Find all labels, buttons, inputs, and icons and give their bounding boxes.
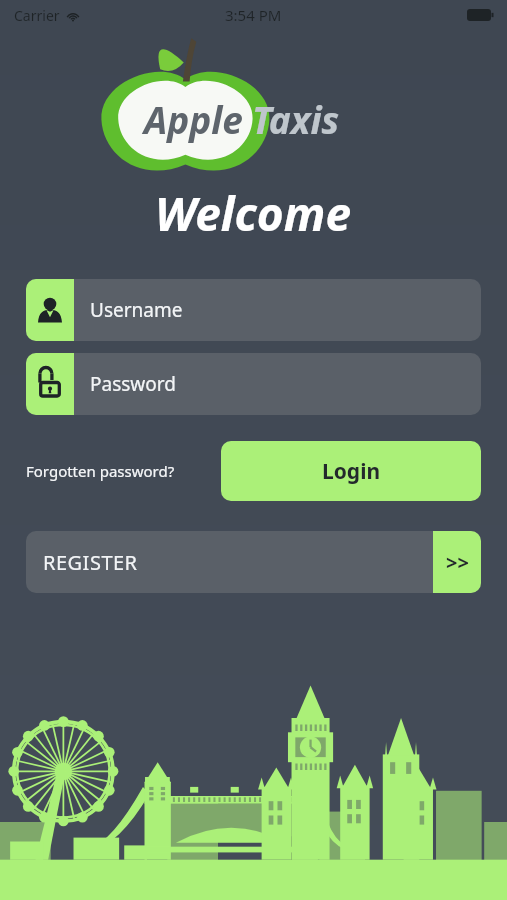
staticText: Username bbox=[90, 297, 183, 323]
staticText: Carrier bbox=[14, 6, 60, 25]
button[interactable]: Forgotten password? bbox=[26, 441, 221, 501]
button[interactable]: REGISTER bbox=[26, 531, 481, 593]
staticText: 3:54 PM bbox=[225, 5, 282, 25]
staticText: Password bbox=[90, 371, 176, 397]
staticText: Apple bbox=[144, 94, 243, 144]
staticText: Welcome bbox=[155, 182, 352, 245]
staticText: REGISTER bbox=[43, 549, 433, 576]
button[interactable]: Username bbox=[26, 279, 481, 341]
staticText: Login bbox=[322, 457, 381, 486]
button[interactable]: Login bbox=[221, 441, 481, 501]
staticText: >> bbox=[446, 549, 469, 576]
staticText: Taxis bbox=[252, 94, 340, 144]
button[interactable]: Password bbox=[26, 353, 481, 415]
staticText: Forgotten password? bbox=[26, 461, 175, 481]
